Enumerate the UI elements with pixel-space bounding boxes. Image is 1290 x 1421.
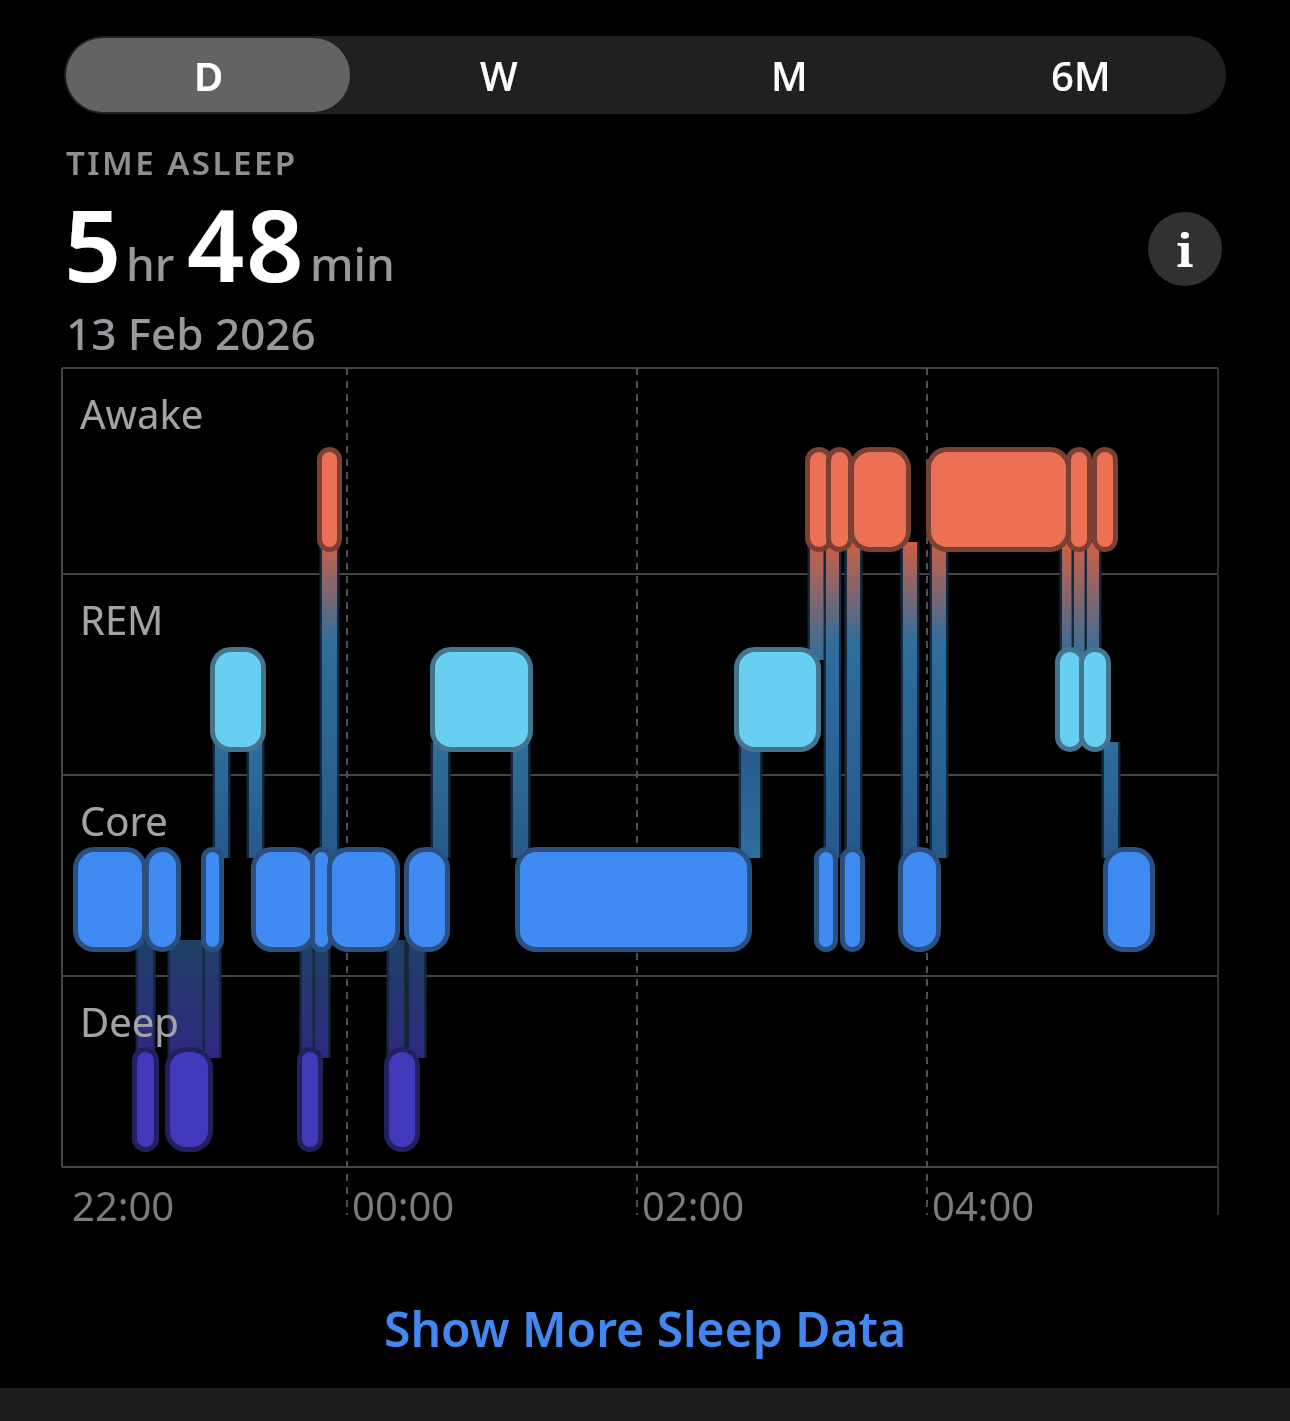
staticText: M — [771, 48, 808, 102]
staticText: 22:00 — [72, 1178, 175, 1232]
staticText: i — [1177, 218, 1194, 281]
staticText: 02:00 — [642, 1178, 745, 1232]
staticText: D — [194, 48, 224, 102]
staticText: W — [480, 48, 518, 102]
button[interactable]: D — [64, 36, 354, 114]
button[interactable]: 6M — [935, 36, 1226, 114]
staticText: 13 Feb 2026 — [66, 303, 316, 363]
staticText: Awake — [80, 386, 204, 440]
button[interactable]: i — [1148, 212, 1222, 286]
button[interactable]: W — [354, 36, 644, 114]
staticText: Core — [80, 793, 168, 847]
staticText: hr — [126, 232, 175, 295]
staticText: TIME ASLEEP — [66, 140, 298, 185]
staticText: Deep — [80, 994, 179, 1048]
staticText: 48 — [187, 175, 306, 311]
button[interactable]: M — [644, 36, 935, 114]
staticText: 00:00 — [352, 1178, 455, 1232]
staticText: 6M — [1051, 48, 1111, 102]
staticText: 04:00 — [932, 1178, 1035, 1232]
staticText: REM — [80, 592, 164, 646]
staticText: 5 — [64, 175, 122, 311]
staticText: min — [310, 232, 395, 295]
button[interactable]: Show More Sleep Data — [384, 1296, 907, 1360]
